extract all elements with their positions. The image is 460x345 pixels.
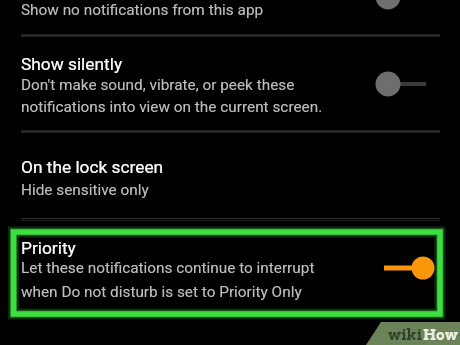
button[interactable]: Show no notifications from this app xyxy=(0,0,460,34)
staticText: Hide sensitive only xyxy=(21,181,149,199)
staticText: Show no notifications from this app xyxy=(21,1,264,19)
staticText: How xyxy=(423,326,458,343)
button[interactable]: Switch, on xyxy=(384,252,439,284)
staticText: Let these notifications continue to inte… xyxy=(21,259,315,300)
staticText: wiki xyxy=(388,326,423,343)
button[interactable]: Switch, off xyxy=(372,68,427,100)
button[interactable]: On the lock screen xyxy=(0,133,460,218)
button[interactable]: Switch, off xyxy=(372,0,427,13)
staticText: Priority xyxy=(21,238,76,258)
staticText: Don't make sound, vibrate, or peek these… xyxy=(21,76,323,115)
button[interactable]: Priority xyxy=(0,220,460,317)
staticText: Show silently xyxy=(21,54,123,74)
button[interactable]: Show silently xyxy=(0,36,460,130)
staticText: On the lock screen xyxy=(21,157,164,177)
